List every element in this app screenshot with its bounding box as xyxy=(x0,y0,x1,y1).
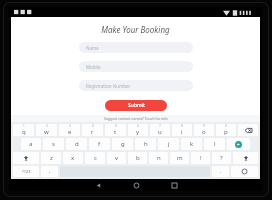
button[interactable]: Recents xyxy=(163,179,185,191)
button[interactable]: l xyxy=(204,138,225,150)
button[interactable]: c xyxy=(85,152,105,164)
button[interactable]: Name xyxy=(79,42,193,53)
button[interactable]: Mobile xyxy=(79,61,193,72)
staticText: v xyxy=(115,154,119,162)
button[interactable]: . xyxy=(212,166,229,177)
button[interactable]: j xyxy=(158,138,179,150)
staticText: Mobile xyxy=(86,64,101,70)
staticText: d xyxy=(75,140,79,148)
staticText: ! xyxy=(200,154,202,162)
staticText: 5 xyxy=(115,124,117,128)
staticText: x xyxy=(71,154,75,162)
button[interactable]: 7 xyxy=(150,124,170,136)
button[interactable]: b xyxy=(128,152,147,164)
button[interactable]: s xyxy=(43,138,64,150)
staticText: p xyxy=(224,128,228,136)
button[interactable]: Shift xyxy=(233,152,258,164)
staticText: . xyxy=(220,168,222,175)
staticText: 4 xyxy=(92,124,94,128)
staticText: g xyxy=(121,140,125,148)
staticText: Name xyxy=(86,45,99,51)
button[interactable]: n xyxy=(149,152,168,164)
button[interactable]: Suggest contact names? Touch for info xyxy=(11,115,260,122)
staticText: c xyxy=(94,154,97,162)
staticText: s xyxy=(52,140,55,148)
staticText: Suggest contact names? Touch for info xyxy=(104,116,168,121)
button[interactable]: a xyxy=(21,138,41,150)
staticText: 2 xyxy=(46,124,48,128)
staticText: b xyxy=(136,154,140,162)
button[interactable]: Enter xyxy=(227,138,250,150)
button[interactable]: ! xyxy=(191,152,210,164)
button[interactable]: 9 xyxy=(194,124,214,136)
button[interactable]: 4 xyxy=(82,124,103,136)
button[interactable]: 5 xyxy=(105,124,126,136)
staticText: z xyxy=(50,154,53,162)
staticText: ?123 xyxy=(22,169,31,174)
staticText: 8 xyxy=(181,124,183,128)
button[interactable]: 3 xyxy=(59,124,80,136)
staticText: l xyxy=(214,140,216,148)
button[interactable]: Home xyxy=(125,179,147,191)
staticText: ? xyxy=(220,154,223,162)
staticText: m xyxy=(177,154,183,162)
button[interactable]: Submit xyxy=(105,100,167,111)
staticText: 1 xyxy=(23,124,25,128)
staticText: y xyxy=(136,128,140,136)
button[interactable]: Backspace xyxy=(238,124,258,136)
staticText: Submit xyxy=(128,102,145,109)
button[interactable]: 0 xyxy=(216,124,236,136)
button[interactable]: ?123 xyxy=(13,166,39,177)
button[interactable]: h xyxy=(135,138,156,150)
staticText: r xyxy=(91,128,94,136)
button[interactable]: Registration Number xyxy=(79,80,193,91)
button[interactable]: Shift xyxy=(13,152,39,164)
staticText: u xyxy=(158,128,162,136)
button[interactable]: 6 xyxy=(128,124,148,136)
button[interactable]: f xyxy=(89,138,110,150)
staticText: h xyxy=(144,140,148,148)
staticText: w xyxy=(44,128,49,136)
staticText: q xyxy=(22,128,26,136)
staticText: e xyxy=(68,128,72,136)
staticText: 7 xyxy=(159,124,161,128)
staticText: f xyxy=(98,140,101,148)
button[interactable]: m xyxy=(170,152,189,164)
staticText: n xyxy=(157,154,161,162)
button[interactable]: k xyxy=(181,138,202,150)
staticText: i xyxy=(181,128,183,136)
staticText: 9 xyxy=(203,124,205,128)
staticText: t xyxy=(114,128,117,136)
button[interactable]: g xyxy=(112,138,133,150)
button[interactable]: v xyxy=(107,152,126,164)
staticText: a xyxy=(29,140,33,148)
button[interactable]: x xyxy=(63,152,83,164)
button[interactable]: 2 xyxy=(36,124,57,136)
button[interactable]: , xyxy=(41,166,58,177)
button[interactable]: d xyxy=(66,138,87,150)
button[interactable]: Back xyxy=(87,179,109,191)
button[interactable]: z xyxy=(41,152,61,164)
button[interactable]: ? xyxy=(212,152,231,164)
staticText: , xyxy=(49,168,51,175)
staticText: 3 xyxy=(69,124,71,128)
button[interactable]: 8 xyxy=(172,124,192,136)
staticText: 0 xyxy=(225,124,227,128)
staticText: j xyxy=(168,140,170,148)
staticText: 6 xyxy=(137,124,139,128)
button[interactable]: Emoji xyxy=(231,166,258,177)
staticText: o xyxy=(202,128,206,136)
staticText: k xyxy=(190,140,194,148)
staticText: Registration Number xyxy=(86,83,131,89)
button[interactable]: 1 xyxy=(13,124,34,136)
staticText: Make Your Booking xyxy=(101,24,170,35)
